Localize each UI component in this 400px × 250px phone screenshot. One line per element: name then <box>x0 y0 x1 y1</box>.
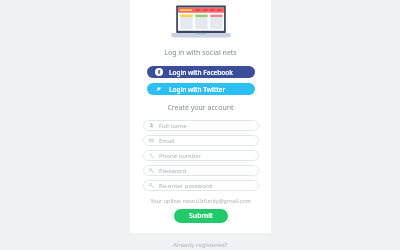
staticText: Already registered? <box>173 241 228 249</box>
staticText: Re-enter password <box>159 182 212 190</box>
button[interactable]: Full name <box>143 120 259 131</box>
staticText: Phone number <box>159 152 202 160</box>
button[interactable]: Re-enter password <box>143 180 259 191</box>
other: Twitter <box>155 85 163 93</box>
staticText: Your upline: nasrul.bfunity@gmail.com <box>150 197 251 204</box>
button[interactable]: Password <box>143 165 259 176</box>
button[interactable]: Phone number <box>143 150 259 161</box>
other: Facebook <box>155 68 163 76</box>
staticText: Full name <box>159 122 187 130</box>
button[interactable]: Already registered? <box>173 241 228 249</box>
staticText: Create your account <box>167 103 234 113</box>
button[interactable]: Facebook <box>147 66 255 78</box>
staticText: Submit <box>189 211 213 221</box>
staticText: Login with Twitter <box>169 85 226 94</box>
staticText: Login with Facebook <box>169 68 233 77</box>
button[interactable]: Twitter <box>147 83 255 95</box>
button[interactable]: Submit <box>174 209 228 223</box>
staticText: Log in with social nets <box>164 48 237 58</box>
button[interactable]: Email <box>143 135 259 146</box>
staticText: Email <box>159 137 175 145</box>
staticText: Password <box>159 167 187 175</box>
